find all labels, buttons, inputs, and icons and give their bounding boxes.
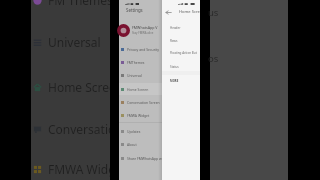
button[interactable]: FM Themes: [31, 0, 110, 10]
button[interactable]: Share FMWhatsApp wi: [119, 152, 162, 164]
staticText: Home Scre: [179, 9, 200, 15]
button[interactable]: Rows: [162, 35, 200, 47]
button[interactable]: Floating Action But: [162, 47, 200, 59]
staticText: Header: [170, 26, 181, 30]
staticText: FMThemes: [127, 60, 145, 65]
staticText: Home Screen: [127, 87, 149, 92]
button[interactable]: About: [119, 138, 162, 150]
button[interactable]: Header: [162, 22, 200, 34]
button[interactable]: Universal: [119, 69, 162, 81]
button[interactable]: FMWA Widget: [119, 109, 162, 121]
staticText: FMWhatsApp V: [132, 25, 158, 30]
button[interactable]: FMWA Widg: [31, 159, 110, 179]
staticText: Floating Action But: [170, 51, 197, 55]
staticText: Share FMWhatsApp wi: [127, 156, 162, 161]
staticText: Conversation Screen: [127, 100, 160, 105]
staticText: Status: [170, 65, 179, 69]
staticText: us: [208, 6, 219, 19]
button[interactable]: Home Screen: [119, 83, 162, 95]
staticText: Conversatio: [48, 121, 110, 137]
staticText: FMWA Widg: [48, 161, 110, 177]
staticText: Home Scree: [48, 79, 110, 95]
button[interactable]: Conversatio: [31, 119, 110, 139]
button[interactable]: FMThemes: [119, 56, 162, 68]
staticText: Universal: [48, 34, 101, 50]
button[interactable]: MORE: [162, 75, 200, 87]
button[interactable]: Home Scree: [31, 77, 110, 97]
button[interactable]: Privacy and Security: [119, 43, 162, 55]
button[interactable]: Back: [165, 9, 172, 16]
button[interactable]: Universal: [31, 32, 110, 52]
staticText: MORE: [170, 79, 179, 83]
staticText: About: [127, 142, 137, 147]
button[interactable]: Updates: [119, 125, 162, 137]
staticText: Universal: [127, 73, 142, 78]
staticText: FM Themes: [48, 0, 110, 8]
button[interactable]: Conversation Screen: [119, 96, 162, 108]
staticText: os: [208, 52, 219, 65]
staticText: Stay FMWA alive: [132, 31, 154, 35]
button[interactable]: FMWhatsApp V: [119, 20, 162, 40]
staticText: Privacy and Security: [127, 47, 159, 52]
staticText: FMWA Widget: [127, 113, 150, 118]
staticText: Settings: [126, 7, 143, 13]
button[interactable]: Status: [162, 61, 200, 73]
staticText: Rows: [170, 39, 178, 43]
staticText: Updates: [127, 129, 141, 134]
